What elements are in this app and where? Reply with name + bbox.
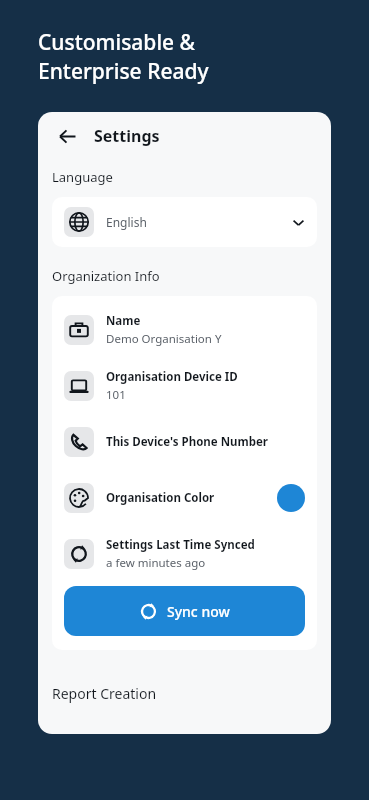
button[interactable]: Settings Last Time Synced [52, 526, 317, 582]
staticText: Organisation Device ID [106, 369, 238, 385]
button[interactable]: Sync now [64, 586, 305, 636]
staticText: Settings Last Time Synced [106, 537, 255, 553]
staticText: Enterprise Ready [38, 57, 209, 86]
staticText: Report Creation [52, 684, 157, 703]
button[interactable]: English [52, 197, 317, 247]
staticText: 101 [106, 387, 126, 403]
button[interactable]: This Device's Phone Number [52, 414, 317, 470]
button[interactable]: Back [52, 121, 82, 151]
staticText: This Device's Phone Number [106, 434, 268, 450]
staticText: Organisation Color [106, 490, 215, 506]
button[interactable]: Report Creation [38, 676, 331, 710]
staticText: Settings [94, 125, 160, 147]
button[interactable]: Organisation Color [52, 470, 317, 526]
staticText: Demo Organisation Y [106, 331, 222, 347]
staticText: Organization Info [52, 267, 160, 285]
staticText: Sync now [167, 602, 230, 621]
button[interactable]: Organisation colour swatch [277, 484, 305, 512]
staticText: Language [52, 168, 113, 186]
button[interactable]: Organisation Device ID [52, 358, 317, 414]
staticText: a few minutes ago [106, 555, 206, 571]
staticText: Name [106, 313, 141, 329]
staticText: Customisable & [38, 28, 196, 57]
staticText: English [106, 214, 292, 230]
button[interactable]: Name [52, 302, 317, 358]
